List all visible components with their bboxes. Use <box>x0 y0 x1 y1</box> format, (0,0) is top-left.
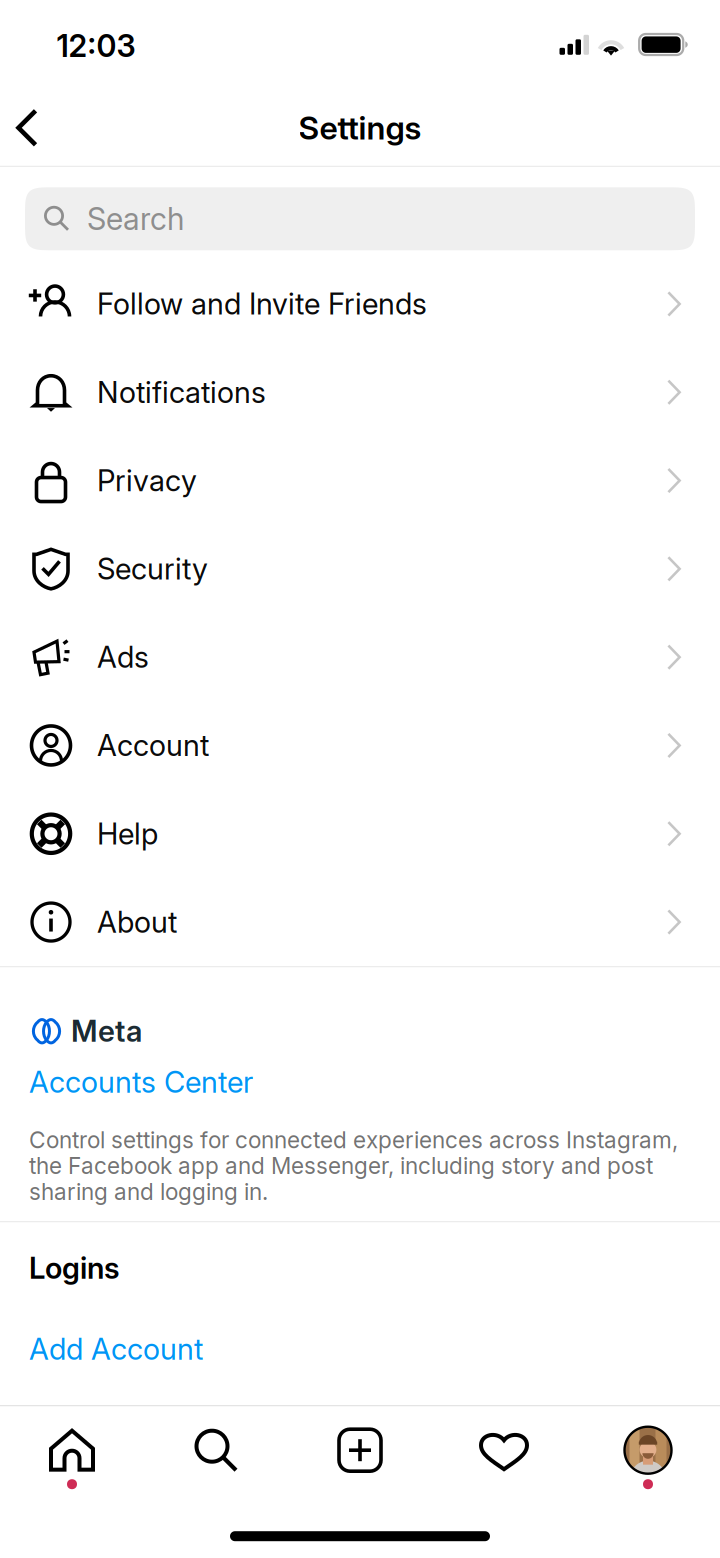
button[interactable]: Accounts Center <box>29 1060 691 1104</box>
staticText: Help <box>97 816 158 851</box>
staticText: Follow and Invite Friends <box>97 286 427 322</box>
button[interactable]: New post <box>288 1395 432 1505</box>
staticText: Add Account <box>29 1331 203 1367</box>
button[interactable]: Privacy <box>0 436 720 525</box>
button[interactable]: Ads <box>0 613 720 701</box>
button[interactable]: Home <box>0 1405 144 1515</box>
button[interactable]: Add Account <box>29 1327 691 1371</box>
staticText: Security <box>97 551 208 587</box>
button[interactable]: Search <box>144 1395 288 1505</box>
button[interactable]: Search <box>25 187 695 250</box>
button[interactable]: Profile <box>576 1405 720 1515</box>
staticText: Notifications <box>97 374 266 410</box>
staticText: Accounts Center <box>29 1064 253 1100</box>
button[interactable]: Follow and Invite Friends <box>0 260 720 348</box>
staticText: Account <box>97 728 209 763</box>
staticText: About <box>97 904 177 940</box>
button[interactable]: Activity <box>432 1395 576 1505</box>
button[interactable]: About <box>0 878 720 966</box>
button[interactable]: Help <box>0 790 720 878</box>
staticText: Meta <box>71 1013 142 1049</box>
staticText: Ads <box>97 639 149 675</box>
button[interactable]: Back <box>0 96 60 160</box>
button[interactable]: Account <box>0 701 720 790</box>
button[interactable]: Security <box>0 525 720 613</box>
staticText: Control settings for connected experienc… <box>29 1126 678 1205</box>
staticText: Logins <box>29 1250 120 1286</box>
staticText: Search <box>87 200 184 237</box>
staticText: 12:03 <box>56 27 135 64</box>
button[interactable]: Notifications <box>0 348 720 436</box>
staticText: Privacy <box>97 463 197 498</box>
staticText: Settings <box>298 108 421 147</box>
